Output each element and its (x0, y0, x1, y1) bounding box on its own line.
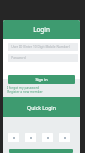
button[interactable]: Quick login account 2 (25, 133, 36, 142)
button[interactable]: Password (8, 54, 78, 62)
staticText: Login (33, 25, 50, 34)
button[interactable]: Login (3, 20, 80, 39)
staticText: Password (11, 56, 26, 60)
staticText: Register a new member (7, 90, 43, 94)
staticText: I forgot my password (7, 86, 39, 90)
button[interactable]: Quick login account 1 (8, 133, 19, 142)
staticText: Quick Login (27, 104, 56, 111)
button[interactable]: Quick login account 3 (42, 133, 53, 142)
button[interactable]: I forgot my password (7, 86, 39, 90)
staticText: User ID (Enter 10 Digit Mobile Number) (11, 45, 70, 49)
button[interactable]: User ID (Enter 10 Digit Mobile Number) (8, 43, 78, 51)
staticText: Sign in (35, 77, 48, 82)
button[interactable]: Register a new member (7, 90, 43, 94)
button[interactable]: Quick Login (3, 97, 80, 117)
button[interactable]: Quick login account 4 (59, 133, 70, 142)
button[interactable] (9, 149, 73, 153)
button[interactable]: Sign in (8, 75, 75, 84)
